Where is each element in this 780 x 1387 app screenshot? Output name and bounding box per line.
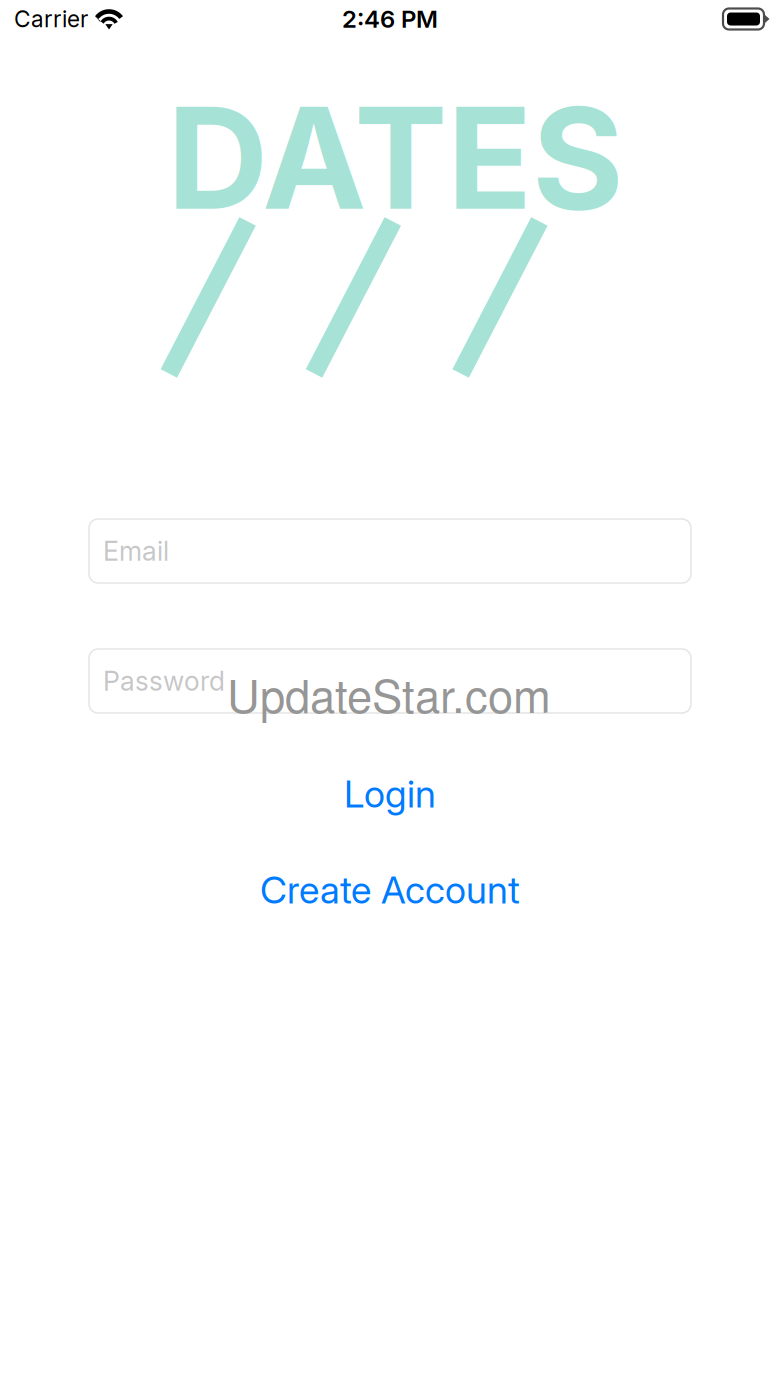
staticText: DATES <box>167 73 624 242</box>
button[interactable]: Create Account <box>230 860 550 920</box>
staticText: Password <box>103 665 225 697</box>
staticText: Login <box>344 771 436 817</box>
button[interactable]: Password <box>89 649 691 713</box>
staticText: Carrier <box>14 5 88 33</box>
button[interactable]: Login <box>270 764 510 824</box>
staticText: Create Account <box>260 867 520 913</box>
button[interactable]: Email <box>89 519 691 583</box>
staticText: 2:46 PM <box>342 4 438 33</box>
staticText: Email <box>103 535 169 567</box>
staticText: UpdateStar.com <box>227 661 551 726</box>
